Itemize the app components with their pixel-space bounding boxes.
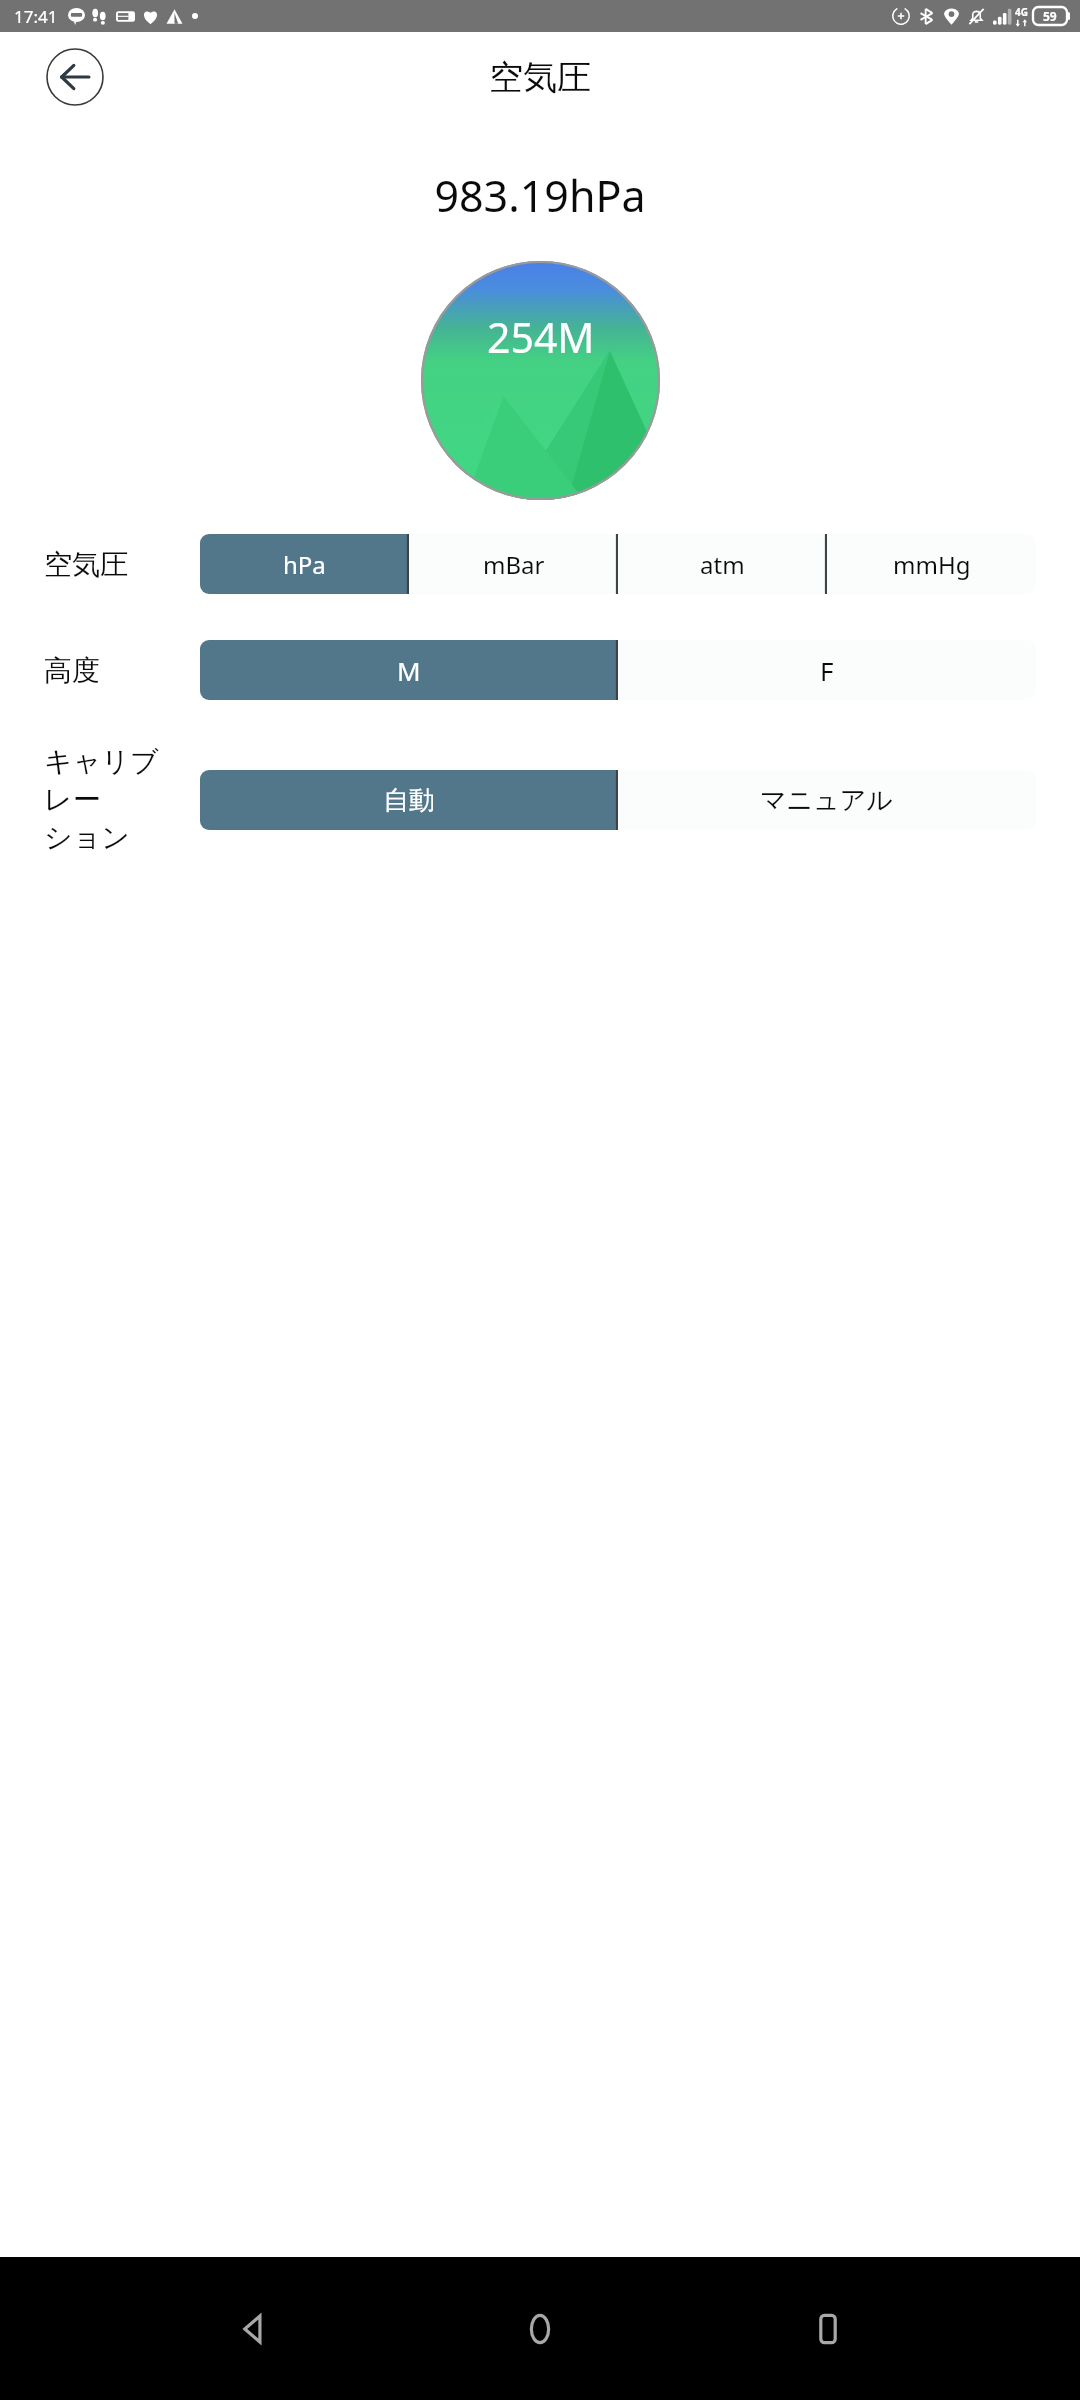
staticText: 空気圧 (44, 547, 128, 582)
button[interactable]: atm (618, 534, 827, 594)
staticText: 17:41 (14, 5, 58, 28)
button[interactable]: Recent apps (792, 2293, 864, 2365)
staticText: 空気圧 (489, 56, 591, 99)
staticText: M (397, 653, 421, 688)
staticText: 自動 (383, 784, 435, 817)
staticText: hPa (283, 548, 326, 581)
button[interactable]: Back (46, 48, 104, 106)
button[interactable]: mmHg (827, 534, 1036, 594)
button[interactable]: 自動 (200, 770, 618, 830)
button[interactable]: Home (504, 2293, 576, 2365)
button[interactable]: mBar (409, 534, 618, 594)
staticText: 254M (487, 309, 595, 365)
staticText: 983.19hPa (434, 166, 646, 225)
button[interactable]: マニュアル (618, 770, 1036, 830)
staticText: atm (700, 548, 745, 581)
button[interactable]: M (200, 640, 618, 700)
staticText: マニュアル (760, 784, 894, 817)
button[interactable]: F (618, 640, 1036, 700)
staticText: キャリブレー ション (44, 744, 174, 856)
button[interactable]: hPa (200, 534, 409, 594)
staticText: 4G (1015, 5, 1028, 19)
staticText: 高度 (44, 653, 100, 688)
button[interactable]: Back (216, 2293, 288, 2365)
staticText: mBar (483, 548, 545, 581)
staticText: mmHg (893, 548, 971, 581)
staticText: 59 (1043, 8, 1057, 24)
staticText: F (820, 653, 834, 688)
